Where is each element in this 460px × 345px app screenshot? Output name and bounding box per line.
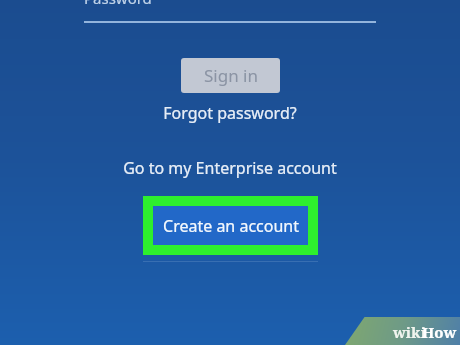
- button[interactable]: Sign in: [181, 58, 280, 93]
- button[interactable]: Create an account: [143, 196, 318, 255]
- staticText: Sign in: [204, 64, 258, 87]
- staticText: Forgot password?: [163, 102, 297, 124]
- staticText: Password: [84, 0, 152, 8]
- button[interactable]: Go to my Enterprise account: [105, 155, 355, 181]
- other: wikiHow watermark: [345, 317, 460, 345]
- staticText: How: [422, 322, 457, 342]
- staticText: Go to my Enterprise account: [123, 157, 337, 179]
- staticText: wiki: [393, 322, 426, 342]
- button[interactable]: Forgot password?: [140, 100, 320, 126]
- button[interactable]: Password: [84, 0, 376, 24]
- staticText: Create an account: [163, 215, 299, 237]
